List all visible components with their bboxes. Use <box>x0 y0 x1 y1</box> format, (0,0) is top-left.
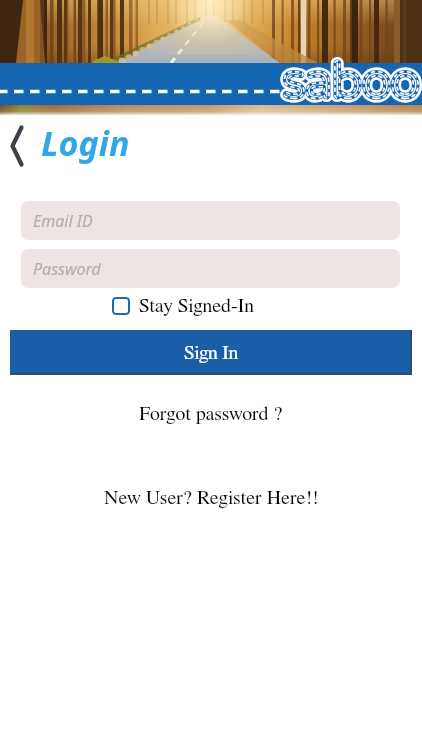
staticText: Password <box>33 258 101 280</box>
staticText: Stay Signed-In <box>139 296 255 316</box>
staticText: Login <box>41 120 130 166</box>
button[interactable]: Forgot password ? <box>139 404 283 424</box>
button[interactable]: Email ID <box>21 201 400 240</box>
staticText: saboo <box>282 52 419 112</box>
staticText: saboo <box>282 52 419 112</box>
button[interactable]: Stay Signed-In <box>112 296 255 316</box>
staticText: Sign In <box>184 343 238 363</box>
button[interactable]: Password <box>21 249 400 288</box>
staticText: Email ID <box>33 210 93 232</box>
button[interactable]: Sign In <box>10 330 412 375</box>
staticText: saboo <box>282 52 419 112</box>
button[interactable]: New User? Register Here!! <box>104 488 319 508</box>
